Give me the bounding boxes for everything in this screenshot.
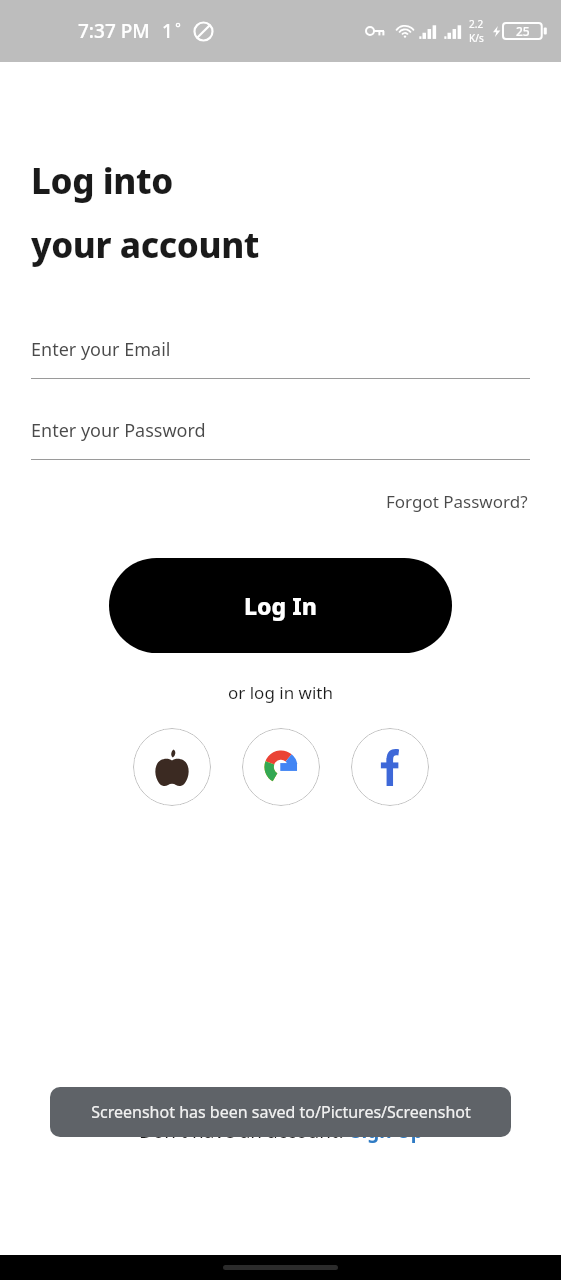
staticText: 2.2: [469, 17, 484, 31]
staticText: Enter your Email: [31, 337, 171, 362]
staticText: Sign Up: [351, 1118, 423, 1144]
staticText: Log into: [31, 157, 173, 205]
staticText: Enter your Password: [31, 418, 206, 443]
staticText: 1: [162, 18, 173, 44]
staticText: Don't have an account?: [139, 1118, 351, 1144]
button[interactable]: Enter your Email: [0, 337, 561, 379]
button[interactable]: Sign Up: [351, 1118, 423, 1144]
staticText: Screenshot has been saved to/Pictures/Sc…: [91, 1101, 471, 1123]
button[interactable]: Enter your Password: [0, 418, 561, 460]
staticText: Log In: [244, 590, 317, 621]
staticText: 7:37 PM: [78, 18, 150, 44]
staticText: Forgot Password?: [386, 490, 528, 513]
staticText: 25: [516, 23, 530, 39]
button[interactable]: Log In: [109, 558, 452, 653]
staticText: K/s: [469, 31, 484, 45]
staticText: or log in with: [0, 681, 561, 704]
button[interactable]: Sign in with Google: [242, 728, 320, 806]
button[interactable]: Forgot Password?: [384, 487, 530, 516]
staticText: your account: [31, 221, 260, 269]
button[interactable]: Sign in with Facebook: [351, 728, 429, 806]
button[interactable]: Sign in with Apple: [133, 728, 211, 806]
